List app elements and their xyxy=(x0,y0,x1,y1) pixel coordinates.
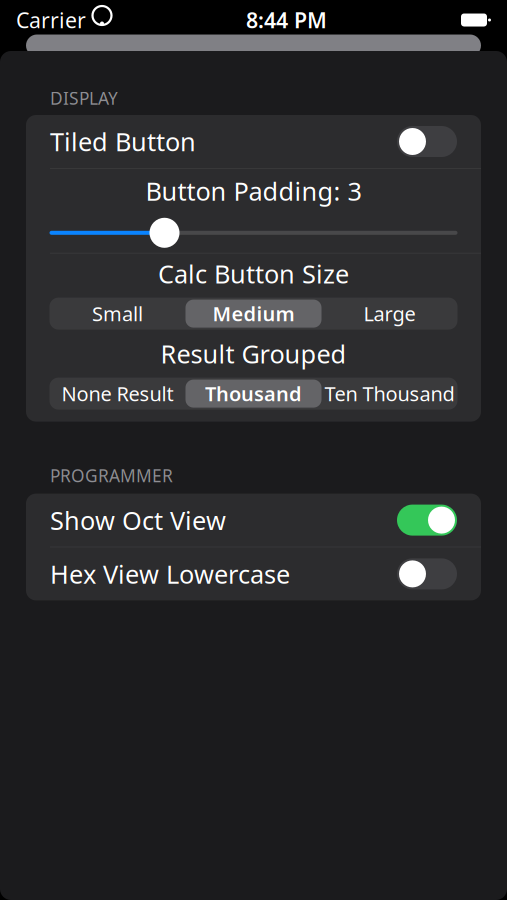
staticText: Large xyxy=(363,300,415,327)
button[interactable]: Ten Thousand xyxy=(321,380,457,408)
button[interactable]: Show Oct View xyxy=(26,494,481,547)
staticText: Hex View Lowercase xyxy=(50,557,290,591)
staticText: Calc Button Size xyxy=(158,257,349,290)
button[interactable]: Tiled Button xyxy=(26,115,481,168)
button[interactable]: Thousand xyxy=(185,380,321,408)
staticText: Tiled Button xyxy=(50,125,196,158)
staticText: Carrier xyxy=(16,6,86,34)
staticText: Thousand xyxy=(205,380,302,407)
staticText: None Result xyxy=(61,380,173,407)
staticText: DISPLAY xyxy=(50,86,118,109)
button[interactable]: Hex View Lowercase xyxy=(26,547,481,600)
staticText: Result Grouped xyxy=(160,337,346,370)
staticText: Show Oct View xyxy=(50,503,226,537)
button[interactable]: Small xyxy=(49,300,185,328)
button[interactable]: Medium xyxy=(185,300,321,328)
button[interactable]: Large xyxy=(321,300,457,328)
staticText: Medium xyxy=(212,300,294,327)
staticText: Small xyxy=(92,300,143,327)
staticText: PROGRAMMER xyxy=(50,464,173,487)
staticText: Ten Thousand xyxy=(324,380,454,407)
button[interactable]: None Result xyxy=(49,380,185,408)
button[interactable]: Button Padding xyxy=(49,216,457,250)
staticText: 8:44 PM xyxy=(246,6,327,34)
staticText: Button Padding: 3 xyxy=(145,174,361,208)
